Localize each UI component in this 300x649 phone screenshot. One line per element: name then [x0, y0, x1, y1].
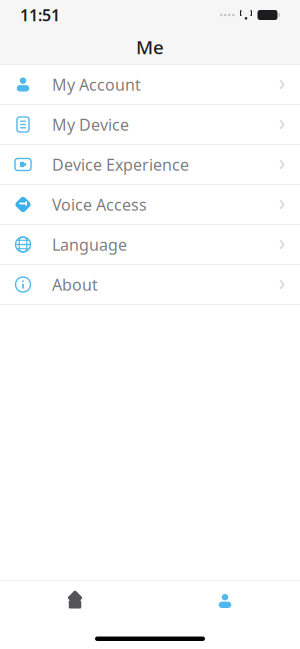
button[interactable]: My Account: [0, 65, 300, 104]
button[interactable]: Language: [0, 225, 300, 264]
staticText: About: [52, 274, 98, 295]
button[interactable]: Me: [150, 581, 300, 621]
button[interactable]: About: [0, 265, 300, 304]
staticText: 11:51: [20, 4, 60, 26]
staticText: My Device: [52, 114, 129, 135]
staticText: Device Experience: [52, 154, 189, 175]
button[interactable]: My Device: [0, 105, 300, 144]
button[interactable]: Voice Access: [0, 185, 300, 224]
button[interactable]: Device Experience: [0, 145, 300, 184]
staticText: Voice Access: [52, 194, 147, 215]
button[interactable]: Home: [0, 581, 150, 621]
staticText: Language: [52, 234, 127, 255]
staticText: Me: [136, 35, 164, 59]
staticText: My Account: [52, 74, 141, 95]
